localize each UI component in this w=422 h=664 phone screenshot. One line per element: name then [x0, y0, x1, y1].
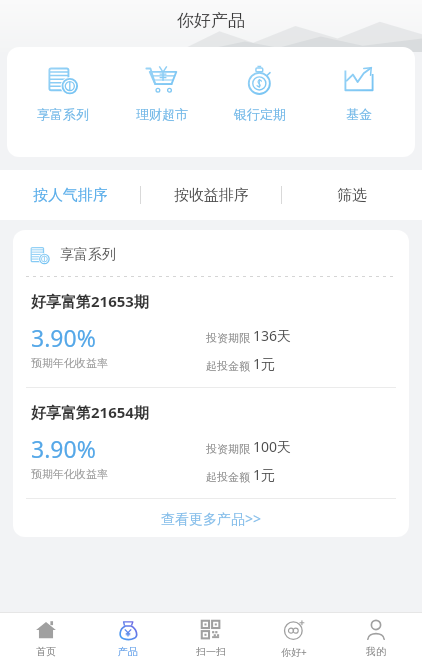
- staticText: 预期年化收益率: [31, 356, 108, 370]
- staticText: 享富系列: [37, 106, 89, 122]
- button[interactable]: 按收益排序: [141, 170, 281, 220]
- button[interactable]: 理财超市: [119, 61, 205, 124]
- button[interactable]: 好享富第21654期: [13, 388, 409, 498]
- staticText: 按收益排序: [174, 186, 249, 205]
- button[interactable]: 筛选: [282, 170, 422, 220]
- staticText: 1元: [253, 465, 276, 484]
- button[interactable]: 扫一扫: [174, 612, 248, 664]
- button[interactable]: 我的: [339, 612, 413, 664]
- staticText: 理财超市: [136, 106, 188, 122]
- button[interactable]: 查看更多产品>>: [13, 499, 409, 537]
- staticText: 投资期限: [206, 330, 253, 345]
- staticText: 筛选: [337, 186, 367, 205]
- button[interactable]: 好享富第21653期: [13, 277, 409, 387]
- staticText: 起投金额: [206, 358, 253, 373]
- staticText: 银行定期: [234, 106, 286, 122]
- staticText: 好享富第21654期: [31, 402, 149, 422]
- staticText: 100天: [253, 437, 292, 456]
- staticText: 扫一扫: [196, 645, 226, 658]
- staticText: 起投金额: [206, 469, 253, 484]
- staticText: 享富系列: [60, 246, 116, 264]
- staticText: 好享富第21653期: [31, 291, 149, 311]
- staticText: 3.90%: [31, 433, 96, 464]
- staticText: 136天: [253, 326, 292, 345]
- button[interactable]: 首页: [9, 612, 83, 664]
- staticText: 3.90%: [31, 322, 96, 353]
- button[interactable]: 产品: [91, 612, 165, 664]
- staticText: 查看更多产品>>: [161, 509, 262, 528]
- staticText: 首页: [36, 645, 56, 658]
- button[interactable]: 享富系列: [20, 61, 106, 124]
- button[interactable]: 你好+: [257, 612, 331, 664]
- staticText: 1元: [253, 354, 276, 373]
- button[interactable]: 银行定期: [217, 61, 303, 124]
- staticText: 基金: [346, 106, 372, 122]
- button[interactable]: 基金: [316, 61, 402, 124]
- staticText: 我的: [366, 645, 386, 658]
- button[interactable]: 按人气排序: [0, 170, 140, 220]
- staticText: 预期年化收益率: [31, 467, 108, 481]
- staticText: 按人气排序: [33, 186, 108, 205]
- staticText: 你好产品: [177, 10, 245, 31]
- staticText: 产品: [118, 645, 138, 658]
- staticText: 投资期限: [206, 441, 253, 456]
- staticText: 你好+: [281, 645, 307, 659]
